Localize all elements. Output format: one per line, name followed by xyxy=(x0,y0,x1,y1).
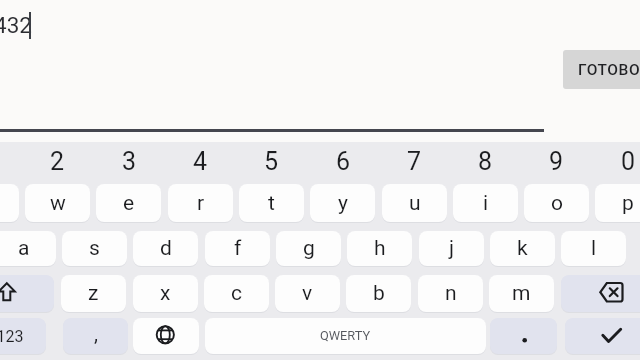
staticText: w xyxy=(50,191,66,216)
button[interactable]: 6 xyxy=(308,142,378,180)
staticText: e xyxy=(123,191,135,216)
button[interactable]: x xyxy=(133,275,198,312)
button[interactable]: 7 xyxy=(379,142,449,180)
staticText: v xyxy=(302,281,313,306)
button[interactable]: u xyxy=(382,184,447,222)
staticText: 5 xyxy=(264,147,279,176)
staticText: 432 xyxy=(0,12,32,38)
button[interactable]: e xyxy=(96,184,161,222)
button[interactable] xyxy=(133,318,199,354)
button[interactable]: r xyxy=(168,184,233,222)
button[interactable]: p xyxy=(595,184,640,222)
button[interactable]: 8 xyxy=(450,142,520,180)
staticText: 7 xyxy=(407,147,422,176)
staticText: 8 xyxy=(478,147,493,176)
button[interactable]: ГОТОВО xyxy=(563,50,640,89)
staticText: m xyxy=(512,281,531,306)
staticText: l xyxy=(591,236,597,261)
button[interactable] xyxy=(561,275,640,312)
staticText: o xyxy=(551,191,563,216)
staticText: u xyxy=(409,191,421,216)
button[interactable]: b xyxy=(346,275,411,312)
button[interactable]: 3 xyxy=(94,142,164,180)
button[interactable] xyxy=(490,318,557,354)
staticText: b xyxy=(373,281,385,306)
staticText: 0 xyxy=(621,147,636,176)
button[interactable]: y xyxy=(310,184,375,222)
button[interactable]: QWERTY xyxy=(205,318,486,354)
staticText: d xyxy=(160,236,172,261)
button[interactable]: c xyxy=(204,275,269,312)
staticText: a xyxy=(18,236,30,261)
button[interactable]: 9 xyxy=(521,142,591,180)
staticText: c xyxy=(231,281,242,306)
staticText: r xyxy=(197,191,205,216)
button[interactable]: a xyxy=(0,231,56,266)
staticText: f xyxy=(234,236,242,261)
button[interactable] xyxy=(0,275,54,312)
staticText: 3 xyxy=(122,147,137,176)
staticText: n xyxy=(445,281,457,306)
staticText: k xyxy=(517,236,528,261)
staticText: ?123 xyxy=(0,327,24,346)
staticText: x xyxy=(160,281,171,306)
staticText: 9 xyxy=(549,147,564,176)
button[interactable]: q xyxy=(0,184,19,222)
staticText: t xyxy=(268,191,275,216)
staticText: 4 xyxy=(193,147,208,176)
button[interactable]: k xyxy=(490,231,555,266)
staticText: 2 xyxy=(50,147,65,176)
button[interactable]: o xyxy=(524,184,589,222)
button[interactable]: g xyxy=(276,231,341,266)
button[interactable]: v xyxy=(275,275,340,312)
button[interactable]: d xyxy=(133,231,198,266)
staticText: QWERTY xyxy=(320,328,371,343)
staticText: p xyxy=(622,191,634,216)
button[interactable]: h xyxy=(347,231,412,266)
staticText: 6 xyxy=(336,147,351,176)
staticText: ГОТОВО xyxy=(578,61,640,79)
staticText: y xyxy=(338,191,348,216)
button[interactable]: t xyxy=(239,184,304,222)
staticText: i xyxy=(483,191,489,216)
button[interactable]: 5 xyxy=(236,142,306,180)
button[interactable]: , xyxy=(63,318,128,354)
button[interactable]: 4 xyxy=(165,142,235,180)
button[interactable]: n xyxy=(418,275,483,312)
button[interactable]: ?123 xyxy=(0,318,46,354)
staticText: j xyxy=(449,236,455,261)
button[interactable]: f xyxy=(205,231,270,266)
button[interactable]: 2 xyxy=(22,142,92,180)
button[interactable]: i xyxy=(453,184,518,222)
staticText: , xyxy=(94,322,98,345)
staticText: h xyxy=(374,236,386,261)
button[interactable]: w xyxy=(25,184,90,222)
button[interactable]: l xyxy=(561,231,626,266)
button[interactable]: m xyxy=(489,275,554,312)
button[interactable]: s xyxy=(62,231,127,266)
staticText: s xyxy=(89,236,100,261)
staticText: g xyxy=(303,236,315,261)
staticText: z xyxy=(88,281,99,306)
button[interactable]: 0 xyxy=(593,142,640,180)
button[interactable] xyxy=(565,318,640,354)
button[interactable]: z xyxy=(61,275,126,312)
button[interactable]: j xyxy=(419,231,484,266)
